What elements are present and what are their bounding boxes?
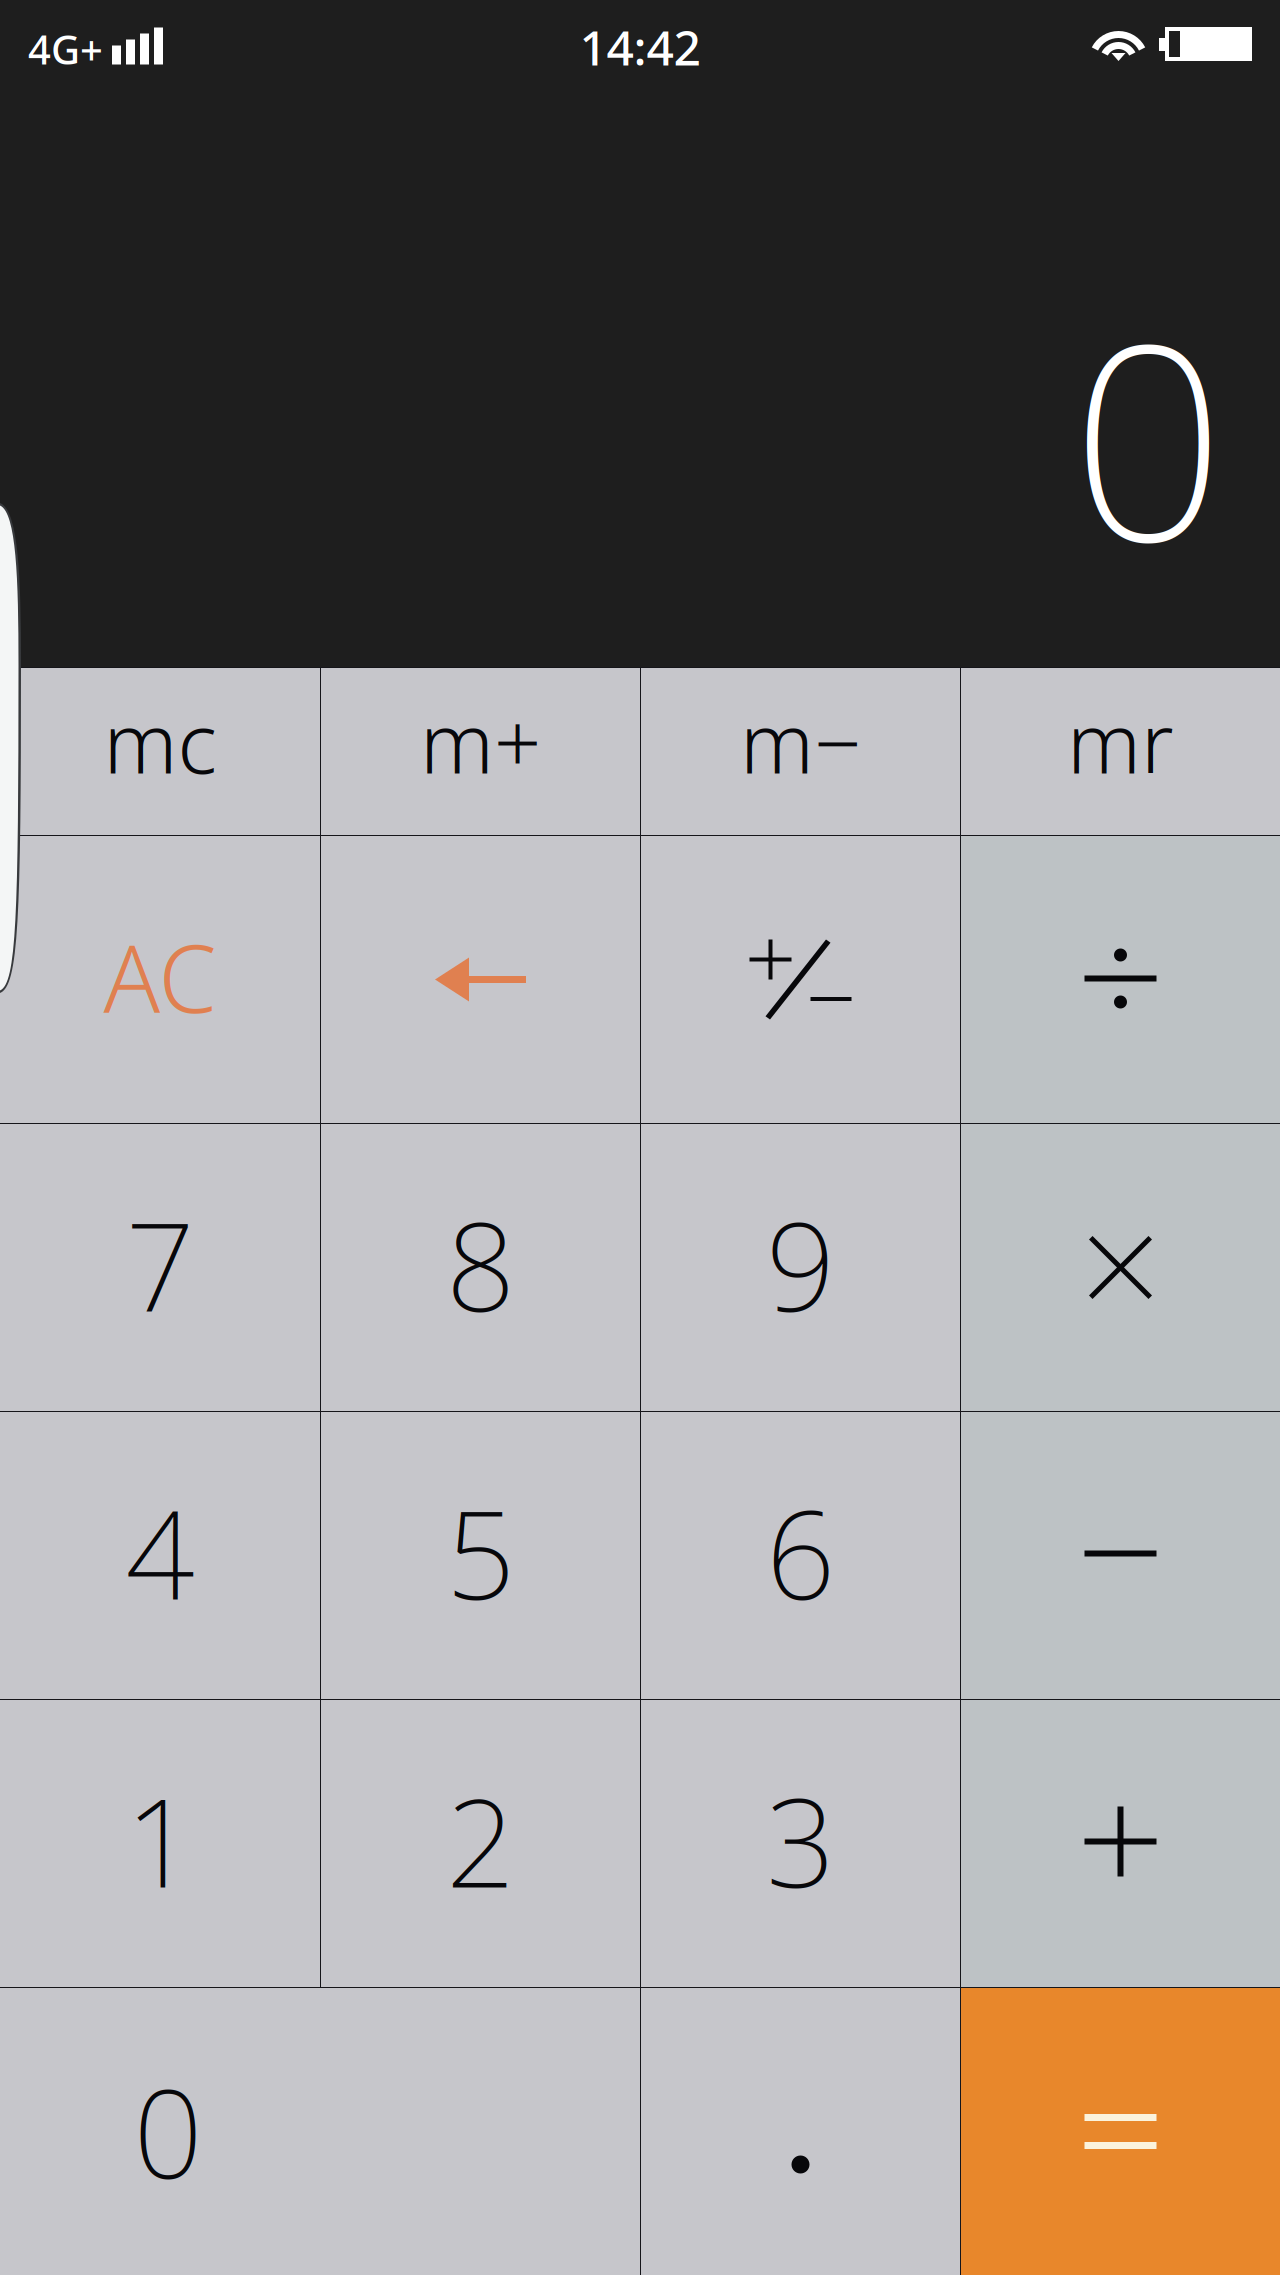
button[interactable]: 8 bbox=[321, 1124, 640, 1411]
staticText: AC bbox=[103, 913, 216, 1040]
staticText: 4 bbox=[125, 1470, 194, 1635]
staticText: 14:42 bbox=[579, 14, 700, 80]
staticText: 3 bbox=[766, 1758, 835, 1923]
button[interactable]: mr bbox=[961, 668, 1280, 835]
staticText: 4G+ bbox=[28, 22, 103, 76]
button[interactable]: Equals bbox=[961, 1988, 1280, 2275]
staticText: 0 bbox=[1071, 251, 1225, 620]
button[interactable]: 1 bbox=[0, 1700, 320, 1987]
staticText: 5 bbox=[446, 1470, 515, 1635]
button[interactable]: Divide bbox=[961, 836, 1280, 1123]
button[interactable]: Decimal point bbox=[641, 1988, 960, 2275]
button[interactable]: 5 bbox=[321, 1412, 640, 1699]
button[interactable]: 9 bbox=[641, 1124, 960, 1411]
button[interactable]: AC bbox=[0, 836, 320, 1123]
button[interactable]: m+ bbox=[321, 668, 640, 835]
staticText: mr bbox=[1067, 685, 1174, 798]
button[interactable]: 7 bbox=[0, 1124, 320, 1411]
button[interactable]: 4 bbox=[0, 1412, 320, 1699]
staticText: mc bbox=[103, 685, 216, 798]
staticText: 7 bbox=[125, 1182, 194, 1347]
button[interactable]: Multiply bbox=[961, 1124, 1280, 1411]
staticText: m− bbox=[740, 685, 861, 798]
staticText: 1 bbox=[125, 1758, 194, 1923]
staticText: 9 bbox=[766, 1182, 835, 1347]
button[interactable]: Plus bbox=[961, 1700, 1280, 1987]
staticText: 8 bbox=[446, 1182, 515, 1347]
staticText: 0 bbox=[133, 2049, 202, 2214]
button[interactable]: Minus bbox=[961, 1412, 1280, 1699]
staticText: 6 bbox=[766, 1470, 835, 1635]
button[interactable]: m− bbox=[641, 668, 960, 835]
button[interactable]: mc bbox=[0, 668, 320, 835]
staticText: 2 bbox=[446, 1758, 515, 1923]
button[interactable]: 6 bbox=[641, 1412, 960, 1699]
staticText: m+ bbox=[420, 685, 541, 798]
button[interactable]: Backspace bbox=[321, 836, 640, 1123]
button[interactable]: 2 bbox=[321, 1700, 640, 1987]
button[interactable]: 0 bbox=[0, 1988, 640, 2275]
button[interactable]: 3 bbox=[641, 1700, 960, 1987]
button[interactable]: Plus minus bbox=[641, 836, 960, 1123]
